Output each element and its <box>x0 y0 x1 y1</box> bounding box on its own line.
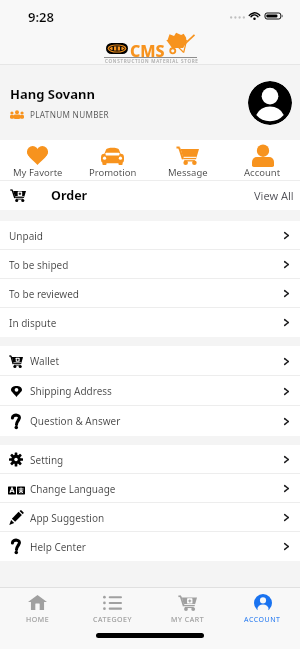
staticText: MY CART <box>171 615 205 625</box>
button[interactable]: My Favorte <box>0 140 75 180</box>
staticText: Shipping Address <box>30 384 112 398</box>
staticText: CMS <box>130 40 165 62</box>
button[interactable]: CATEGOEY <box>75 588 150 629</box>
button[interactable]: Unpaid <box>0 221 300 250</box>
button[interactable]: ACCOUNT <box>225 588 300 629</box>
staticText: View All <box>254 188 294 203</box>
button[interactable]: Wallet <box>0 346 300 376</box>
staticText: Question & Answer <box>30 414 121 428</box>
button[interactable]: App Suggestion <box>0 503 300 532</box>
button[interactable]: Setting <box>0 445 300 474</box>
button[interactable]: In dispute <box>0 308 300 337</box>
staticText: CONSTRUCTION MATERIAL STORE <box>105 58 199 64</box>
staticText: Setting <box>30 453 64 467</box>
staticText: Hang Sovann <box>10 85 95 103</box>
staticText: Order <box>51 187 88 204</box>
staticText: In dispute <box>9 316 57 330</box>
button[interactable]: Message <box>150 140 225 180</box>
staticText: ACCOUNT <box>244 615 281 625</box>
button[interactable]: Change Language <box>0 474 300 503</box>
staticText: To be reviewed <box>9 287 80 301</box>
button[interactable]: Question & Answer <box>0 406 300 436</box>
staticText: App Suggestion <box>30 511 105 525</box>
staticText: My Favorte <box>13 166 63 179</box>
button[interactable]: To be reviewed <box>0 279 300 308</box>
staticText: Promotion <box>89 166 137 179</box>
button[interactable]: View All <box>244 184 300 207</box>
button[interactable]: HOME <box>0 588 75 629</box>
staticText: To be shiped <box>9 258 69 272</box>
staticText: PLATNUM NUMBER <box>30 109 110 120</box>
button[interactable]: To be shiped <box>0 250 300 279</box>
staticText: 9:28 <box>28 8 54 26</box>
button[interactable]: Profile photo <box>248 81 292 125</box>
staticText: Help Center <box>30 540 86 554</box>
staticText: Unpaid <box>9 229 43 243</box>
staticText: Account <box>244 166 281 179</box>
staticText: Wallet <box>30 354 60 368</box>
button[interactable]: Promotion <box>75 140 150 180</box>
staticText: CATEGOEY <box>93 615 133 625</box>
button[interactable]: MY CART <box>150 588 225 629</box>
button[interactable]: Shipping Address <box>0 376 300 406</box>
button[interactable]: Account <box>225 140 300 180</box>
staticText: Change Language <box>30 482 116 496</box>
staticText: HOME <box>26 615 50 625</box>
button[interactable]: Help Center <box>0 532 300 561</box>
staticText: Message <box>168 166 208 179</box>
